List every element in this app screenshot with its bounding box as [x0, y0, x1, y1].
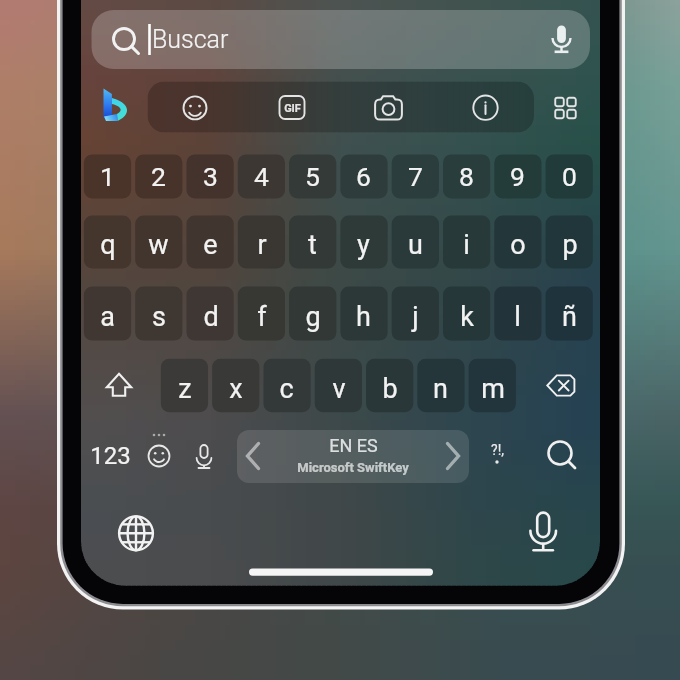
staticText: 2: [151, 161, 166, 192]
staticText: 1: [100, 161, 115, 192]
button[interactable]: Buscar: [152, 20, 372, 58]
button[interactable]: t: [289, 223, 336, 266]
staticText: o: [510, 229, 526, 261]
staticText: m: [481, 373, 505, 405]
staticText: e: [203, 229, 218, 261]
button[interactable]: m: [469, 367, 516, 410]
staticText: x: [229, 373, 243, 405]
staticText: c: [279, 373, 294, 405]
button[interactable]: 123: [80, 437, 140, 475]
staticText: 4: [254, 161, 269, 192]
staticText: 5: [305, 161, 320, 192]
button[interactable]: n: [417, 367, 464, 410]
staticText: l: [514, 301, 521, 333]
staticText: a: [100, 301, 115, 333]
button[interactable]: 5: [289, 155, 336, 197]
button[interactable]: z: [161, 367, 208, 410]
staticText: u: [408, 229, 423, 261]
button[interactable]: c: [263, 367, 310, 410]
staticText: w: [148, 229, 169, 261]
button[interactable]: 8: [443, 155, 490, 197]
button[interactable]: i: [443, 223, 490, 266]
button[interactable]: r: [238, 223, 285, 266]
button[interactable]: 1: [84, 155, 131, 197]
button[interactable]: j: [392, 295, 439, 338]
button[interactable]: q: [84, 223, 131, 266]
button[interactable]: u: [392, 223, 439, 266]
staticText: 8: [459, 161, 474, 192]
staticText: 123: [90, 442, 131, 470]
button[interactable]: ñ: [546, 295, 593, 338]
button[interactable]: f: [238, 295, 285, 338]
button[interactable]: l: [494, 295, 541, 338]
staticText: t: [308, 229, 317, 261]
button[interactable]: s: [135, 295, 182, 338]
staticText: r: [257, 229, 267, 261]
staticText: i: [463, 229, 470, 261]
button[interactable]: 9: [494, 155, 541, 197]
button[interactable]: v: [315, 367, 362, 410]
button[interactable]: k: [443, 295, 490, 338]
staticText: d: [203, 301, 219, 333]
button[interactable]: b: [366, 367, 413, 410]
staticText: v: [332, 373, 346, 405]
staticText: z: [178, 373, 192, 405]
staticText: s: [152, 301, 166, 333]
staticText: ñ: [562, 301, 577, 333]
button[interactable]: 0: [546, 155, 593, 197]
button[interactable]: y: [340, 223, 387, 266]
staticText: y: [357, 229, 370, 261]
button[interactable]: g: [289, 295, 336, 338]
staticText: k: [460, 301, 474, 333]
button[interactable]: 7: [392, 155, 439, 197]
button[interactable]: p: [546, 223, 593, 266]
staticText: Buscar: [152, 25, 229, 54]
button[interactable]: h: [340, 295, 387, 338]
button[interactable]: w: [135, 223, 182, 266]
staticText: g: [305, 301, 321, 333]
staticText: 0: [562, 161, 577, 192]
button[interactable]: a: [84, 295, 131, 338]
button[interactable]: 4: [238, 155, 285, 197]
staticText: q: [100, 229, 116, 261]
staticText: 9: [510, 161, 525, 192]
button[interactable]: 3: [187, 155, 234, 197]
staticText: ?!,: [491, 442, 504, 458]
staticText: EN ES: [329, 435, 378, 456]
button[interactable]: d: [187, 295, 234, 338]
staticText: j: [412, 301, 419, 333]
staticText: 7: [408, 161, 423, 192]
staticText: h: [356, 301, 371, 333]
staticText: n: [433, 373, 448, 405]
staticText: 6: [356, 161, 371, 192]
button[interactable]: e: [187, 223, 234, 266]
staticText: 3: [203, 161, 218, 192]
button[interactable]: x: [212, 367, 259, 410]
button[interactable]: 6: [340, 155, 387, 197]
staticText: p: [562, 229, 578, 261]
staticText: GIF: [284, 102, 301, 115]
button[interactable]: 2: [135, 155, 182, 197]
staticText: Microsoft SwiftKey: [297, 460, 409, 475]
staticText: b: [382, 373, 398, 405]
button[interactable]: o: [494, 223, 541, 266]
staticText: f: [257, 301, 267, 333]
